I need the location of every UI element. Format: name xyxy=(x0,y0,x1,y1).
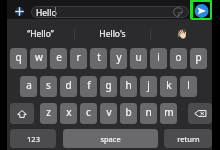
button[interactable]: a xyxy=(20,76,37,97)
button[interactable]: Backspace xyxy=(188,103,212,124)
staticText: Hello's xyxy=(99,28,126,40)
staticText: g xyxy=(105,78,112,92)
button[interactable]: Hello's xyxy=(75,24,150,44)
staticText: t xyxy=(97,50,101,64)
staticText: 👋🏻 xyxy=(176,29,188,40)
button[interactable]: w xyxy=(30,48,47,69)
button[interactable]: r xyxy=(70,48,87,69)
button[interactable]: b xyxy=(120,103,137,124)
button[interactable]: Stickers xyxy=(173,7,183,17)
staticText: f xyxy=(87,78,91,92)
staticText: c xyxy=(86,105,91,119)
staticText: q xyxy=(15,50,22,64)
staticText: v xyxy=(106,105,112,119)
staticText: p xyxy=(195,50,202,64)
button[interactable]: s xyxy=(40,76,57,97)
staticText: i xyxy=(157,50,160,64)
staticText: d xyxy=(65,78,72,92)
staticText: “Hello” xyxy=(27,28,54,40)
button[interactable]: t xyxy=(90,48,107,69)
button[interactable]: l xyxy=(180,76,197,97)
button[interactable]: k xyxy=(160,76,177,97)
button[interactable]: j xyxy=(140,76,157,97)
button[interactable]: f xyxy=(80,76,97,97)
staticText: w xyxy=(35,50,43,64)
button[interactable]: Send xyxy=(190,0,212,20)
staticText: return xyxy=(177,134,200,144)
button[interactable]: i xyxy=(150,48,167,69)
button[interactable]: d xyxy=(60,76,77,97)
staticText: u xyxy=(135,50,142,64)
button[interactable]: space xyxy=(63,129,158,148)
staticText: Hello xyxy=(36,7,57,19)
button[interactable]: z xyxy=(40,103,57,124)
button[interactable]: c xyxy=(80,103,97,124)
button[interactable]: h xyxy=(120,76,137,97)
button[interactable] xyxy=(31,6,189,18)
staticText: o xyxy=(175,50,182,64)
button[interactable]: q xyxy=(10,48,27,69)
staticText: y xyxy=(116,50,122,64)
staticText: m xyxy=(164,105,174,119)
button[interactable]: e xyxy=(50,48,67,69)
button[interactable]: p xyxy=(190,48,207,69)
button[interactable]: Add xyxy=(13,5,26,18)
button[interactable]: Shift xyxy=(10,103,34,124)
button[interactable]: m xyxy=(160,103,177,124)
staticText: l xyxy=(187,78,190,92)
staticText: n xyxy=(145,105,152,119)
staticText: b xyxy=(125,105,132,119)
button[interactable]: g xyxy=(100,76,117,97)
button[interactable]: u xyxy=(130,48,147,69)
button[interactable]: x xyxy=(60,103,77,124)
button[interactable]: “Hello” xyxy=(7,24,74,44)
staticText: j xyxy=(147,78,150,92)
staticText: k xyxy=(166,78,172,92)
button[interactable]: Waving hand emoji xyxy=(151,24,212,44)
staticText: 123 xyxy=(27,134,40,144)
staticText: s xyxy=(46,78,51,92)
button[interactable]: o xyxy=(170,48,187,69)
staticText: x xyxy=(66,105,72,119)
staticText: r xyxy=(76,50,81,64)
button[interactable]: return xyxy=(164,129,212,148)
button[interactable]: y xyxy=(110,48,127,69)
button[interactable]: v xyxy=(100,103,117,124)
staticText: e xyxy=(56,50,62,64)
staticText: z xyxy=(46,105,51,119)
button[interactable]: 123 xyxy=(10,129,56,148)
staticText: space xyxy=(100,134,121,144)
staticText: h xyxy=(125,78,132,92)
staticText: a xyxy=(26,78,32,92)
button[interactable]: n xyxy=(140,103,157,124)
